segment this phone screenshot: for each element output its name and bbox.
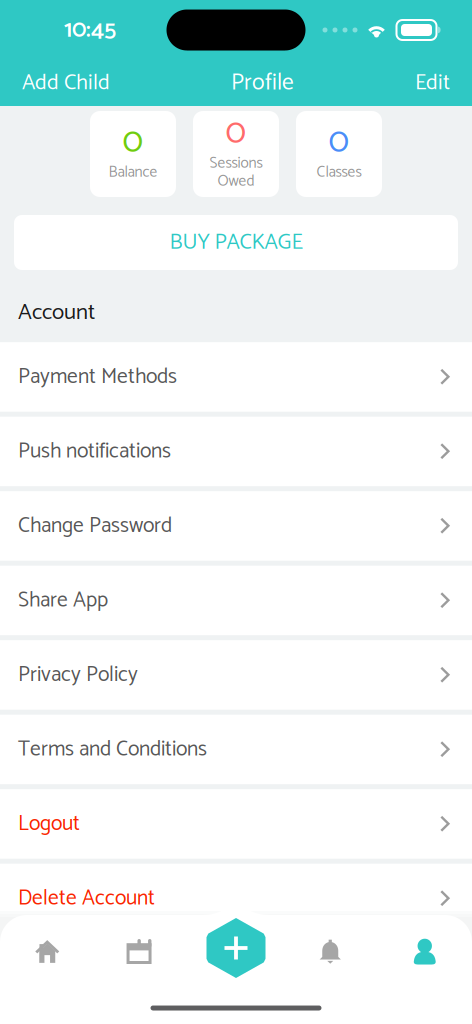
button[interactable]: Notifications: [283, 916, 377, 987]
staticText: Edit: [415, 65, 450, 101]
staticText: Delete Account: [18, 881, 155, 916]
button[interactable]: Logout: [0, 789, 472, 859]
staticText: Change Password: [18, 508, 172, 543]
staticText: Owed: [217, 169, 254, 194]
staticText: Share App: [18, 583, 108, 618]
button[interactable]: Add: [206, 918, 265, 978]
button[interactable]: Payment Methods: [0, 342, 472, 412]
staticText: Logout: [18, 806, 80, 841]
button[interactable]: Home: [0, 916, 94, 987]
button[interactable]: Profile: [377, 916, 472, 987]
button[interactable]: BUY PACKAGE: [14, 215, 458, 270]
button[interactable]: Change Password: [0, 491, 472, 561]
staticText: Privacy Policy: [18, 657, 138, 692]
button[interactable]: Add Child: [0, 60, 132, 106]
staticText: 10:45: [64, 10, 116, 50]
button[interactable]: Delete Account: [0, 864, 472, 933]
staticText: 0: [225, 105, 246, 161]
staticText: 0: [328, 114, 349, 170]
staticText: Push notifications: [18, 434, 171, 469]
staticText: BUY PACKAGE: [169, 224, 302, 261]
staticText: Account: [18, 294, 95, 331]
button[interactable]: Share App: [0, 566, 472, 635]
button[interactable]: Privacy Policy: [0, 640, 472, 710]
button[interactable]: Edit: [393, 60, 472, 106]
staticText: Profile: [231, 64, 294, 102]
staticText: Sessions: [209, 151, 262, 176]
staticText: Payment Methods: [18, 359, 177, 394]
staticText: Add Child: [22, 65, 110, 101]
staticText: Balance: [108, 160, 157, 185]
button[interactable]: Schedule: [94, 916, 189, 987]
staticText: Classes: [316, 160, 361, 185]
button[interactable]: Push notifications: [0, 417, 472, 486]
staticText: Terms and Conditions: [18, 732, 207, 767]
staticText: 0: [122, 114, 143, 170]
button[interactable]: Terms and Conditions: [0, 715, 472, 784]
